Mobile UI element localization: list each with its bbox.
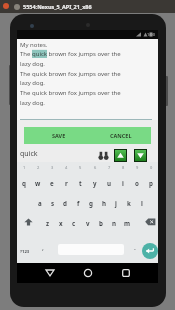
staticText: 1:00: [147, 32, 155, 37]
staticText: l: [141, 199, 143, 207]
staticText: y: [93, 179, 97, 187]
staticText: 0: [150, 165, 153, 170]
staticText: 6: [94, 165, 97, 170]
button[interactable]: [3, 3, 9, 9]
staticText: g: [89, 199, 93, 207]
staticText: z: [46, 219, 50, 227]
button[interactable]: [142, 243, 158, 259]
staticText: k: [127, 199, 131, 207]
staticText: The quick brown fox jumps over the: [20, 89, 121, 97]
staticText: o: [135, 179, 139, 187]
staticText: u: [107, 179, 112, 187]
button[interactable]: [145, 218, 156, 226]
staticText: 4: [65, 165, 68, 170]
staticText: 5: [79, 165, 82, 170]
staticText: v: [86, 219, 90, 227]
staticText: w: [35, 179, 41, 187]
staticText: n: [112, 219, 117, 227]
button[interactable]: [24, 218, 33, 226]
staticText: quick: [20, 149, 38, 159]
staticText: q: [22, 179, 26, 187]
staticText: t: [79, 179, 82, 187]
staticText: 8: [122, 165, 125, 170]
staticText: e: [50, 179, 54, 187]
staticText: 5554:Nexus_5_API_21_x86: [23, 3, 92, 10]
staticText: i: [122, 179, 124, 187]
button[interactable]: CANCEL: [90, 127, 152, 144]
staticText: lazy dog.: [20, 79, 45, 87]
staticText: The quick brown fox jumps over the: [20, 70, 121, 78]
staticText: 9: [136, 165, 139, 170]
staticText: r: [65, 179, 68, 187]
staticText: b: [99, 219, 103, 227]
staticText: x: [59, 219, 63, 227]
staticText: a: [38, 199, 42, 207]
staticText: My notes.: [20, 41, 48, 49]
button[interactable]: [42, 265, 58, 281]
staticText: j: [115, 199, 117, 207]
staticText: 1: [23, 165, 26, 170]
button[interactable]: [80, 265, 96, 281]
staticText: h: [102, 199, 107, 207]
staticText: The quick brown fox jumps over the: [20, 50, 121, 58]
staticText: p: [149, 179, 153, 187]
button[interactable]: [14, 4, 20, 10]
staticText: .: [134, 243, 136, 253]
staticText: f: [77, 199, 80, 207]
staticText: lazy dog.: [20, 60, 45, 68]
staticText: c: [72, 219, 76, 227]
staticText: s: [51, 199, 55, 207]
staticText: lazy dog.: [20, 99, 45, 107]
staticText: 3: [51, 165, 54, 170]
staticText: SAVE: [52, 132, 66, 139]
staticText: ,: [42, 243, 44, 253]
button[interactable]: [134, 149, 147, 162]
staticText: CANCEL: [110, 132, 132, 139]
button[interactable]: SAVE: [27, 127, 91, 144]
staticText: 2: [37, 165, 40, 170]
button[interactable]: [114, 149, 127, 162]
staticText: 7: [108, 165, 111, 170]
staticText: d: [63, 199, 67, 207]
button[interactable]: [118, 265, 134, 281]
staticText: m: [124, 219, 131, 227]
staticText: ?123: [20, 249, 30, 255]
